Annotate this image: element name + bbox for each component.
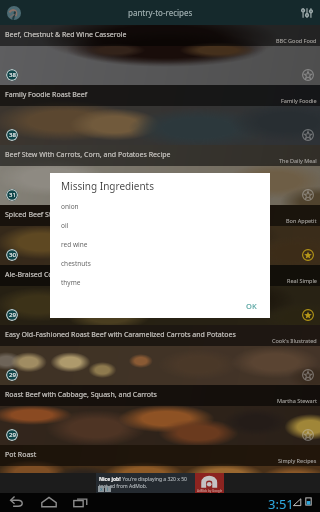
button[interactable]: Favorite bbox=[302, 69, 314, 81]
staticText: 29 bbox=[9, 371, 16, 379]
button[interactable]: Pot Roast bbox=[0, 445, 320, 505]
staticText: AdMob by Google bbox=[197, 489, 223, 493]
button[interactable]: Beef, Chestnut & Red Wine Casserole bbox=[0, 25, 320, 85]
button[interactable]: Spiced Beef Stew bbox=[0, 205, 320, 265]
staticText: thyme bbox=[61, 278, 81, 287]
staticText: Ale-Braised Corned Beef bbox=[5, 270, 85, 280]
button[interactable]: Favorite bbox=[302, 429, 314, 441]
staticText: Roast Beef with Cabbage, Squash, and Car… bbox=[5, 390, 157, 400]
button[interactable]: Favorite bbox=[302, 249, 314, 261]
button[interactable]: Roast Beef with Cabbage, Squash, and Car… bbox=[0, 385, 320, 445]
staticText: onion bbox=[61, 202, 79, 211]
staticText: BBC Good Food bbox=[276, 37, 317, 44]
staticText: 31 bbox=[9, 191, 16, 199]
staticText: red wine bbox=[61, 240, 88, 249]
staticText: i bbox=[107, 486, 109, 492]
staticText: Cook's Illustrated bbox=[272, 337, 317, 344]
button[interactable]: Favorite bbox=[302, 129, 314, 141]
staticText: chestnuts bbox=[61, 259, 91, 268]
staticText: Beef Stew With Carrots, Corn, and Potato… bbox=[5, 150, 171, 160]
staticText: 3:51 bbox=[268, 495, 294, 512]
staticText: 30 bbox=[9, 251, 16, 259]
staticText: 29 bbox=[9, 311, 16, 319]
button[interactable]: Ale-Braised Corned Beef bbox=[0, 265, 320, 325]
button[interactable]: Settings bbox=[300, 6, 314, 20]
staticText: The Daily Meal bbox=[279, 157, 317, 164]
button[interactable]: Favorite bbox=[302, 489, 314, 501]
staticText: 38 bbox=[9, 131, 16, 139]
staticText: x bbox=[100, 486, 103, 492]
staticText: Spiced Beef Stew bbox=[5, 210, 61, 220]
button[interactable]: Home bbox=[40, 493, 58, 511]
staticText: Real Simple bbox=[287, 277, 317, 284]
staticText: Bon Appetit bbox=[286, 217, 317, 224]
button[interactable]: Nice job! bbox=[96, 473, 224, 493]
staticText: Family Foodie Roast Beef bbox=[5, 90, 88, 100]
staticText: Easy Old-Fashioned Roast Beef with Caram… bbox=[5, 330, 236, 340]
staticText: You're displaying a 320 x 50 bbox=[121, 476, 187, 483]
staticText: Martha Stewart bbox=[277, 397, 317, 404]
staticText: oil bbox=[61, 221, 69, 230]
staticText: 38 bbox=[9, 71, 16, 79]
staticText: test ad from AdMob. bbox=[99, 483, 148, 490]
staticText: OK bbox=[246, 301, 257, 311]
button[interactable]: Family Foodie Roast Beef bbox=[0, 85, 320, 145]
button[interactable]: Recents bbox=[72, 493, 90, 511]
button[interactable]: Back bbox=[7, 493, 25, 511]
staticText: Family Foodie bbox=[281, 97, 317, 104]
staticText: pantry-to-recipes bbox=[128, 7, 193, 18]
staticText: Beef, Chestnut & Red Wine Casserole bbox=[5, 30, 127, 40]
button[interactable]: App icon bbox=[7, 6, 21, 20]
button[interactable]: Favorite bbox=[302, 189, 314, 201]
button[interactable]: Beef Stew With Carrots, Corn, and Potato… bbox=[0, 145, 320, 205]
staticText: Simply Recipes bbox=[278, 457, 317, 464]
staticText: 29 bbox=[9, 431, 16, 439]
button[interactable]: Favorite bbox=[302, 369, 314, 381]
staticText: Missing Ingredients bbox=[61, 179, 154, 193]
button[interactable]: OK bbox=[239, 297, 264, 315]
staticText: Pot Roast bbox=[5, 450, 37, 460]
staticText: Nice job! bbox=[99, 476, 121, 483]
button[interactable]: Easy Old-Fashioned Roast Beef with Caram… bbox=[0, 325, 320, 385]
staticText: 29 bbox=[9, 491, 16, 499]
button[interactable]: Favorite bbox=[302, 309, 314, 321]
